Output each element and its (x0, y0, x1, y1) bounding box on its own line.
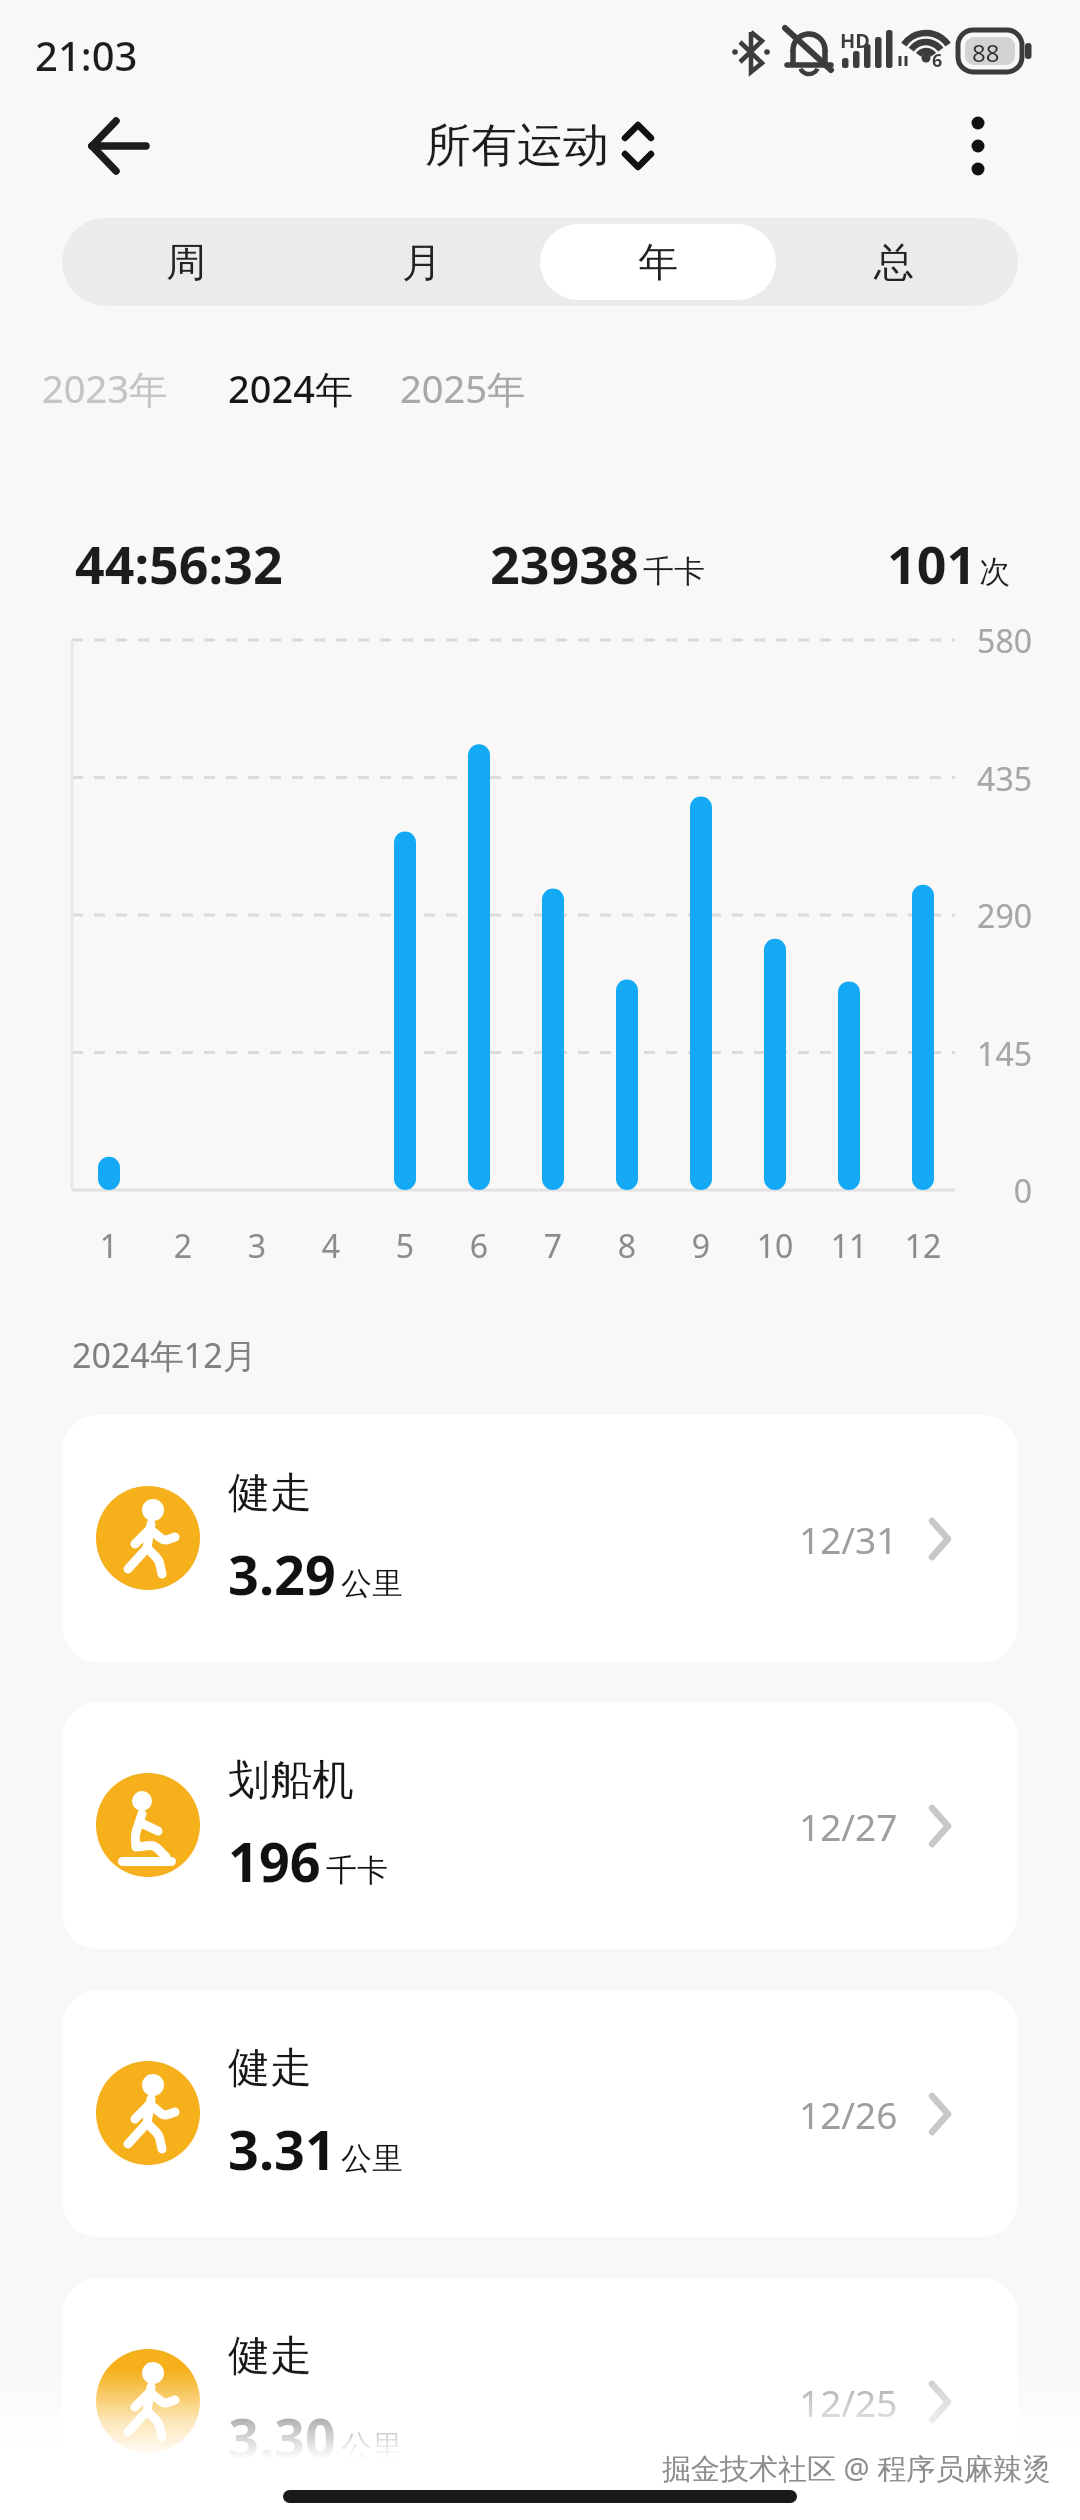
staticText: 196 (228, 1824, 321, 1898)
staticText: 11 (819, 1224, 879, 1268)
staticText: 5 (375, 1224, 435, 1268)
staticText: 12 (893, 1224, 953, 1268)
button[interactable]: 所有运动 (425, 117, 655, 175)
staticText: HD (840, 27, 870, 54)
staticText: 公里 (341, 2427, 403, 2466)
staticText: 6 (932, 48, 943, 73)
staticText: 次 (979, 552, 1010, 591)
staticText: 12/25 (799, 2377, 898, 2427)
staticText: 4 (301, 1224, 361, 1268)
button[interactable]: 划船机 (62, 1702, 1018, 1949)
button[interactable]: 2025年 (400, 362, 525, 414)
staticText: 3 (227, 1224, 287, 1268)
staticText: 月 (402, 237, 442, 287)
staticText: 3.30 (228, 2400, 336, 2474)
button[interactable]: 周 (68, 224, 304, 300)
staticText: 3.31 (228, 2112, 336, 2186)
staticText: 12/26 (799, 2089, 898, 2139)
staticText: 所有运动 (425, 117, 609, 175)
staticText: 1 (79, 1224, 139, 1268)
staticText: 290 (962, 894, 1032, 938)
button[interactable] (84, 108, 160, 184)
staticText: 10 (745, 1224, 805, 1268)
staticText: 8 (597, 1224, 657, 1268)
staticText: 健走 (228, 2330, 312, 2383)
staticText: 划船机 (228, 1754, 354, 1807)
button[interactable] (950, 116, 1006, 172)
staticText: 21:03 (35, 28, 138, 82)
staticText: 9 (671, 1224, 731, 1268)
staticText: 公里 (341, 2139, 403, 2178)
staticText: 3.29 (228, 1537, 336, 1611)
staticText: 12/31 (799, 1514, 898, 1564)
button[interactable]: 2024年 (228, 362, 353, 414)
staticText: 101 (887, 528, 977, 599)
staticText: 健走 (228, 1467, 312, 1520)
staticText: 435 (962, 757, 1032, 801)
staticText: 千卡 (326, 1851, 388, 1890)
staticText: 掘金技术社区 @ 程序员麻辣烫 (662, 2448, 1052, 2488)
button[interactable]: 月 (304, 224, 540, 300)
staticText: 44:56:32 (75, 528, 283, 599)
staticText: 周 (166, 237, 206, 287)
staticText: 6 (449, 1224, 509, 1268)
button[interactable]: 2023年 (42, 362, 167, 414)
staticText: 88 (972, 36, 1000, 69)
staticText: 145 (962, 1032, 1032, 1076)
staticText: 年 (638, 237, 678, 287)
staticText: 总 (874, 237, 914, 287)
button[interactable]: 年 (540, 224, 776, 300)
staticText: 健走 (228, 2042, 312, 2095)
button[interactable]: 健走 (62, 2278, 1018, 2520)
staticText: 2 (153, 1224, 213, 1268)
button[interactable]: 健走 (62, 1990, 1018, 2237)
staticText: 23938 (490, 528, 639, 599)
staticText: 2024年12月 (72, 1332, 257, 1378)
staticText: 580 (962, 619, 1032, 663)
staticText: 0 (962, 1169, 1032, 1213)
button[interactable]: 健走 (62, 1415, 1018, 1662)
button[interactable]: 总 (776, 224, 1012, 300)
staticText: 千卡 (643, 552, 705, 591)
staticText: 7 (523, 1224, 583, 1268)
staticText: 公里 (341, 1564, 403, 1603)
staticText: 12/27 (799, 1801, 898, 1851)
